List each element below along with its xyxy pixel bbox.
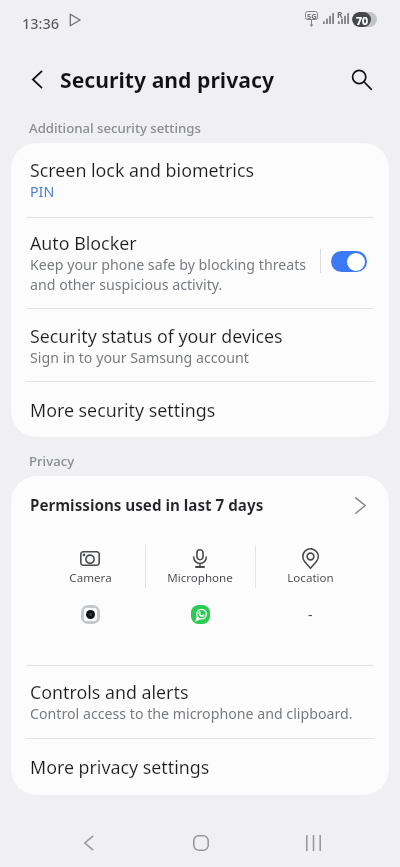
button[interactable]: Search bbox=[338, 56, 384, 102]
staticText: Security and privacy bbox=[60, 65, 275, 94]
staticText: Privacy bbox=[29, 452, 75, 470]
button[interactable]: More privacy settings bbox=[11, 738, 389, 795]
staticText: Control access to the microphone and cli… bbox=[30, 704, 353, 723]
staticText: Location bbox=[287, 570, 334, 586]
button[interactable]: Back bbox=[62, 816, 116, 867]
button[interactable]: Security status of your devices bbox=[11, 308, 389, 381]
staticText: More privacy settings bbox=[30, 755, 210, 779]
staticText: Controls and alerts bbox=[30, 680, 189, 704]
staticText: Security status of your devices bbox=[30, 324, 283, 348]
staticText: Microphone bbox=[167, 570, 233, 586]
button[interactable]: Auto Blocker bbox=[11, 217, 389, 309]
staticText: Permissions used in last 7 days bbox=[30, 495, 264, 516]
button[interactable]: Back bbox=[14, 56, 60, 102]
button[interactable]: More security settings bbox=[11, 381, 389, 437]
staticText: 13:36 bbox=[22, 13, 60, 33]
staticText: Auto Blocker bbox=[30, 231, 137, 255]
staticText: Additional security settings bbox=[29, 119, 201, 137]
button[interactable]: Location bbox=[255, 528, 365, 640]
staticText: 5G bbox=[307, 11, 317, 21]
staticText: Keep your phone safe by blocking threats… bbox=[30, 255, 307, 294]
staticText: R bbox=[337, 9, 343, 21]
button[interactable]: Permissions used in last 7 days bbox=[11, 476, 389, 528]
button[interactable]: Camera bbox=[35, 528, 145, 640]
staticText: More security settings bbox=[30, 398, 216, 422]
button[interactable]: Home bbox=[174, 816, 228, 867]
staticText: Sign in to your Samsung account bbox=[30, 348, 249, 367]
staticText: PIN bbox=[30, 182, 55, 201]
staticText: Screen lock and biometrics bbox=[30, 158, 255, 182]
button[interactable]: Microphone bbox=[145, 528, 255, 640]
button[interactable]: Recents bbox=[286, 816, 340, 867]
staticText: 70 bbox=[356, 14, 369, 27]
button[interactable]: Controls and alerts bbox=[11, 665, 389, 738]
button[interactable]: Auto Blocker toggle bbox=[331, 251, 367, 272]
staticText: - bbox=[308, 605, 313, 624]
button[interactable]: Screen lock and biometrics bbox=[11, 143, 389, 217]
staticText: Camera bbox=[69, 570, 112, 586]
